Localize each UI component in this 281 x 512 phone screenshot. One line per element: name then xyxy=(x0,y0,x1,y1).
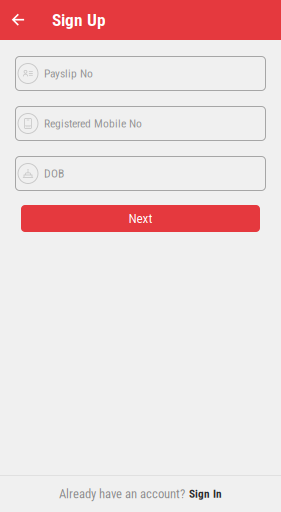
button[interactable]: Payslip No xyxy=(15,56,266,91)
staticText: Sign In xyxy=(189,487,222,501)
staticText: Payslip No xyxy=(44,67,93,80)
button[interactable]: Registered Mobile No xyxy=(15,106,266,141)
staticText: Next xyxy=(128,211,152,226)
button[interactable]: Back xyxy=(6,0,31,40)
staticText: Sign Up xyxy=(52,10,106,30)
button[interactable]: Next xyxy=(21,205,260,232)
button[interactable]: Already have an account? xyxy=(0,476,281,512)
staticText: DOB xyxy=(44,167,64,180)
button[interactable]: DOB xyxy=(15,156,266,191)
staticText: Registered Mobile No xyxy=(44,117,142,130)
staticText: Already have an account? xyxy=(59,487,185,501)
